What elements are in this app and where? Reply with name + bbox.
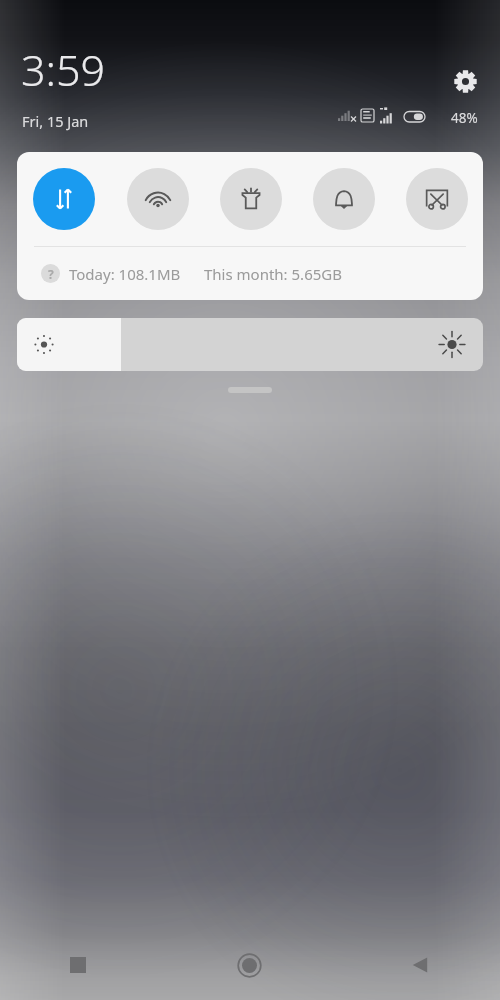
- staticText: Fri, 15 Jan: [22, 111, 89, 131]
- button[interactable]: Wi-Fi: [111, 152, 204, 246]
- staticText: 3:59: [21, 40, 106, 99]
- staticText: Today: 108.1MB: [69, 264, 181, 284]
- button[interactable]: Screenshot: [390, 152, 483, 246]
- button[interactable]: Recent apps: [0, 930, 166, 1000]
- button[interactable]: Settings: [445, 61, 485, 101]
- staticText: 48%: [451, 109, 478, 127]
- button[interactable]: Mobile data: [17, 152, 111, 246]
- staticText: This month: 5.65GB: [204, 264, 342, 284]
- button[interactable]: Flashlight: [204, 152, 297, 246]
- button[interactable]: Do not disturb: [297, 152, 390, 246]
- button[interactable]: Home: [166, 930, 333, 1000]
- staticText: ?: [48, 266, 54, 282]
- button[interactable]: Brightness: [17, 318, 483, 371]
- button[interactable]: Back: [333, 930, 500, 1000]
- button[interactable]: ?: [17, 247, 483, 300]
